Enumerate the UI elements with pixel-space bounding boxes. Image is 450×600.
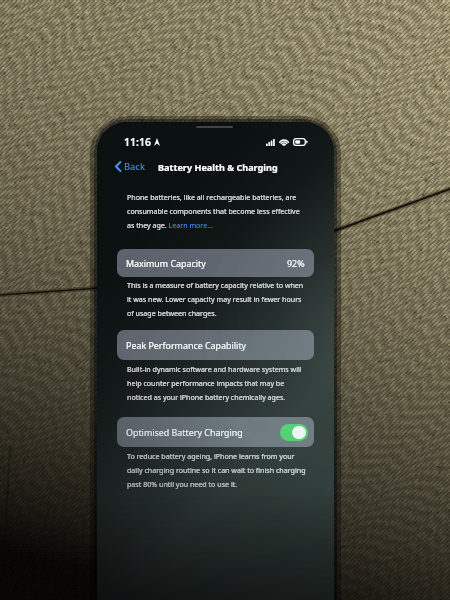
button[interactable]: Optimised Battery Charging [117,417,314,447]
button[interactable]: Optimised Battery Charging toggle [280,424,308,441]
button[interactable]: Maximum Capacity [117,249,314,277]
staticText: Phone batteries, like all rechargeable b… [127,192,307,230]
button[interactable]: Back [112,158,148,175]
staticText: This is a measure of battery capacity re… [127,280,309,318]
button[interactable]: Peak Performance Capability [117,330,314,360]
staticText: Optimised Battery Charging [126,426,243,438]
staticText: Back [124,160,145,173]
staticText: Peak Performance Capability [126,339,247,351]
staticText: Built-in dynamic software and hardware s… [127,364,310,402]
staticText: To reduce battery ageing, iPhone learns … [127,451,310,489]
staticText: Battery Health & Charging [158,161,278,173]
staticText: 92% [287,257,305,269]
staticText: Maximum Capacity [126,257,206,269]
staticText: 11:16 [124,135,151,149]
